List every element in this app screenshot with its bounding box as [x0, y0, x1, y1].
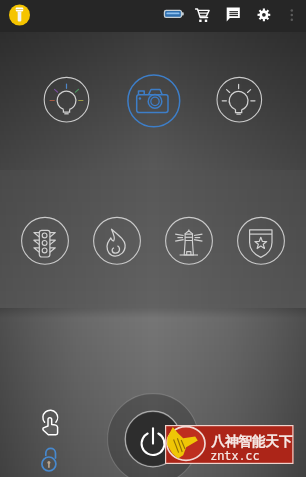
button[interactable]: Traffic light [22, 217, 69, 264]
button[interactable]: Battery [160, 1, 189, 31]
button[interactable]: Camera flash [127, 74, 180, 127]
button[interactable]: Colour light [44, 77, 89, 122]
button[interactable]: Unlock [40, 446, 61, 473]
button[interactable]: Light [217, 77, 262, 122]
button[interactable]: Police [238, 217, 285, 264]
button[interactable]: Settings [249, 1, 278, 31]
button[interactable]: Shop [189, 1, 218, 31]
button[interactable]: Power [107, 393, 199, 477]
button[interactable]: Flashlight [0, 0, 40, 32]
button[interactable]: Lighthouse [166, 217, 213, 264]
button[interactable]: Candle [94, 217, 141, 264]
button[interactable]: Touch mode [40, 408, 61, 436]
button[interactable]: More options [278, 1, 306, 31]
button[interactable]: Messages [219, 1, 248, 31]
